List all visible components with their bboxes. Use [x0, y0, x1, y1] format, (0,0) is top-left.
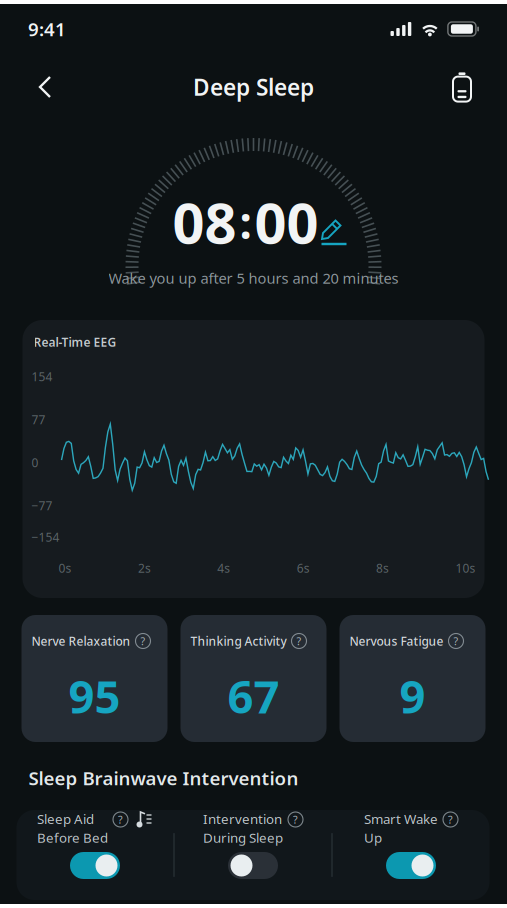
- staticText: Thinking Activity: [190, 633, 286, 649]
- staticText: 0: [31, 454, 38, 470]
- staticText: Sleep Aid: [37, 810, 94, 828]
- staticText: Sleep Brainwave Intervention: [28, 766, 298, 790]
- button[interactable]: Edit wake time: [318, 197, 348, 247]
- staticText: Deep Sleep: [193, 72, 314, 102]
- staticText: 8s: [376, 560, 389, 576]
- staticText: Nervous Fatigue: [349, 633, 443, 649]
- staticText: 9: [399, 666, 425, 726]
- staticText: ?: [296, 634, 301, 648]
- staticText: Real-Time EEG: [33, 334, 116, 350]
- staticText: Smart Wake: [364, 810, 438, 828]
- staticText: Intervention: [203, 810, 282, 828]
- button[interactable]: Intervention: [174, 810, 331, 900]
- staticText: During Sleep: [203, 829, 283, 846]
- staticText: 6s: [297, 560, 310, 576]
- staticText: 0s: [58, 560, 71, 576]
- staticText: Nerve Relaxation: [31, 633, 130, 649]
- staticText: :: [239, 193, 251, 251]
- staticText: 00: [254, 185, 318, 259]
- button[interactable]: Thinking Activity: [180, 615, 326, 742]
- staticText: ?: [448, 812, 453, 827]
- staticText: 95: [68, 666, 120, 726]
- staticText: Up: [364, 829, 382, 846]
- staticText: Before Bed: [37, 829, 108, 846]
- staticText: 4s: [217, 560, 230, 576]
- staticText: ?: [293, 812, 298, 827]
- button[interactable]: Nerve Relaxation: [21, 615, 167, 742]
- button[interactable]: Back: [22, 65, 68, 109]
- staticText: −154: [31, 529, 59, 545]
- staticText: ?: [118, 812, 123, 827]
- staticText: 10s: [455, 560, 475, 576]
- staticText: −77: [31, 497, 52, 513]
- staticText: 77: [31, 411, 45, 427]
- button[interactable]: Battery status: [439, 65, 485, 109]
- staticText: 2s: [138, 560, 151, 576]
- button[interactable]: Nervous Fatigue: [339, 615, 485, 742]
- staticText: 08: [172, 185, 236, 259]
- staticText: ?: [140, 634, 145, 648]
- button[interactable]: Smart Wake: [332, 810, 489, 900]
- button[interactable]: Sleep Aid: [16, 810, 173, 900]
- staticText: 154: [31, 368, 52, 384]
- staticText: 9:41: [28, 17, 66, 41]
- staticText: 67: [227, 666, 279, 726]
- staticText: Wake you up after 5 hours and 20 minutes: [108, 268, 398, 288]
- staticText: ?: [453, 634, 458, 648]
